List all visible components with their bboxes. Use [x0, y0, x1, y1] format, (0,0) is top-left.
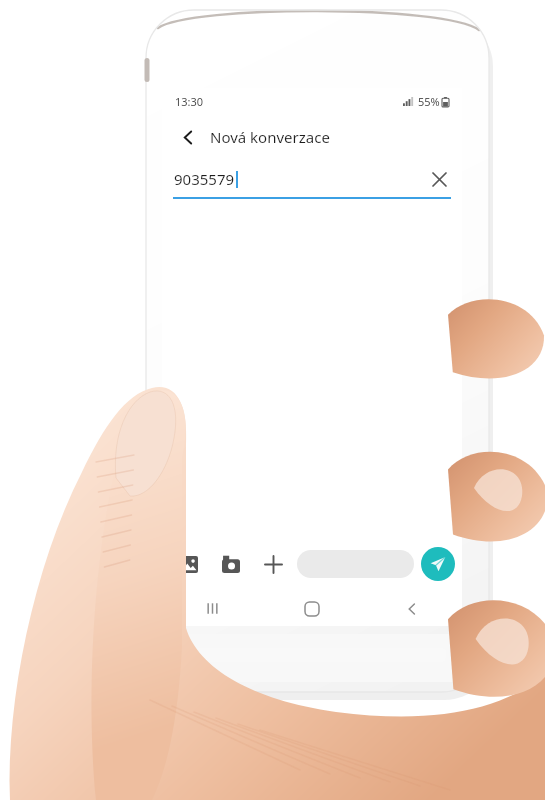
staticText: Nová konverzace — [210, 127, 330, 147]
button[interactable]: Back — [362, 591, 462, 626]
button[interactable]: Recent apps — [162, 591, 262, 626]
button[interactable]: 9035579 — [174, 159, 453, 199]
button[interactable]: Home — [262, 591, 362, 626]
button[interactable]: Gallery — [175, 550, 203, 578]
button[interactable] — [297, 550, 414, 578]
button[interactable]: Clear text — [425, 165, 453, 193]
button[interactable]: Back — [173, 122, 203, 152]
button[interactable]: Add attachment — [259, 550, 287, 578]
staticText: 55% — [418, 94, 440, 109]
staticText: 13:30 — [175, 94, 204, 109]
staticText: 9035579 — [174, 169, 235, 189]
button[interactable]: Send — [421, 547, 455, 581]
button[interactable]: Camera — [217, 550, 245, 578]
